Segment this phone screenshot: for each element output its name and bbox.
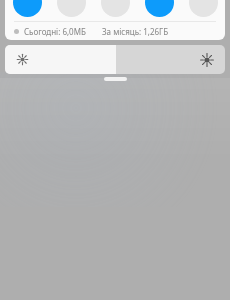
button[interactable]: Flashlight	[181, 0, 225, 20]
button[interactable]: Wi-Fi	[5, 0, 49, 20]
button[interactable]: Brightness	[5, 45, 225, 74]
button[interactable]: Bluetooth	[49, 0, 93, 20]
button[interactable]: Сьогодні: 6,0МБ	[5, 22, 225, 40]
button[interactable]: Expand quick settings	[104, 77, 127, 81]
staticText: За місяць: 1,26ГБ	[102, 26, 169, 37]
button[interactable]: Do not disturb	[93, 0, 137, 20]
staticText: Сьогодні: 6,0МБ	[24, 26, 86, 37]
button[interactable]: Mobile data	[137, 0, 181, 20]
